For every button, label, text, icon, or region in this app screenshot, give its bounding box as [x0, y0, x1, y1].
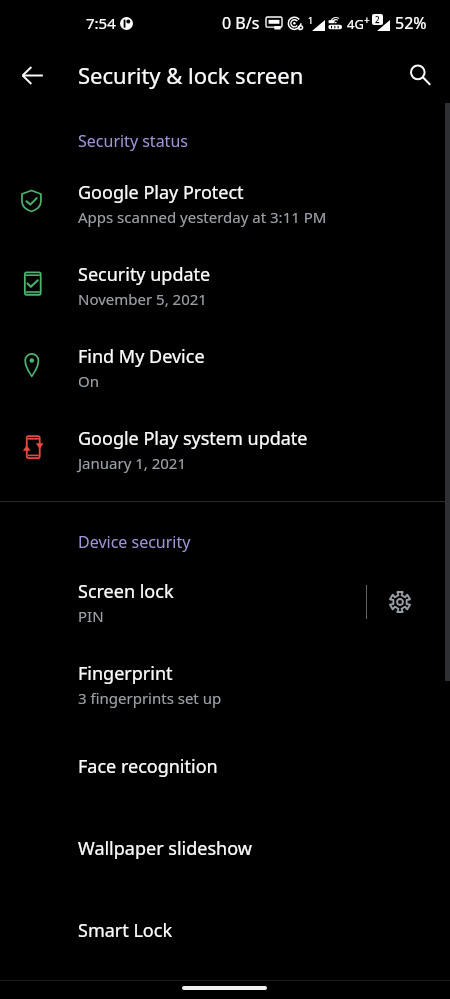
staticText: Face recognition [78, 754, 218, 779]
button[interactable]: Wallpaper slideshow [0, 807, 450, 889]
staticText: 2 [375, 14, 380, 25]
staticText: Device security [78, 531, 191, 553]
staticText: 0 B/s [222, 12, 260, 34]
button[interactable]: Face recognition [0, 725, 450, 807]
staticText: Find My Device [78, 344, 205, 369]
staticText: Security status [78, 130, 188, 152]
button[interactable]: Google Play system update [0, 408, 450, 490]
button[interactable]: Find My Device [0, 326, 450, 408]
staticText: Wallpaper slideshow [78, 836, 252, 861]
staticText: Google Play Protect [78, 180, 244, 205]
staticText: Google Play system update [78, 426, 308, 451]
staticText: 3 fingerprints set up [78, 688, 222, 708]
button[interactable]: Screen lock settings [367, 561, 450, 643]
staticText: Fingerprint [78, 661, 173, 686]
staticText: Security & lock screen [78, 60, 304, 90]
staticText: On [78, 371, 99, 391]
staticText: Screen lock [78, 579, 174, 604]
staticText: 52% [395, 12, 427, 34]
button[interactable]: Security update [0, 244, 450, 326]
button[interactable]: Google Play Protect [0, 162, 450, 244]
staticText: Security update [78, 262, 211, 287]
staticText: 1 [308, 14, 314, 26]
staticText: Apps scanned yesterday at 3:11 PM [78, 207, 327, 227]
staticText: + [364, 13, 370, 27]
staticText: Smart Lock [78, 918, 172, 943]
staticText: November 5, 2021 [78, 289, 207, 309]
staticText: January 1, 2021 [78, 453, 187, 473]
button[interactable]: Fingerprint [0, 643, 450, 725]
button[interactable]: Smart Lock [0, 889, 450, 971]
button[interactable]: Search [397, 52, 443, 98]
staticText: 7:54 [86, 13, 116, 33]
staticText: 4G [347, 15, 364, 33]
button[interactable]: Back [9, 52, 55, 98]
button[interactable]: Screen lock [0, 561, 366, 643]
staticText: PIN [78, 606, 104, 626]
